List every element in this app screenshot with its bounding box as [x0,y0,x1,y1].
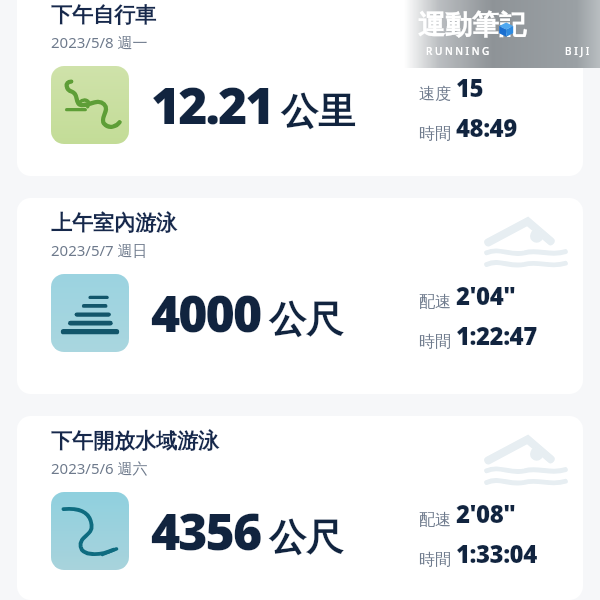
staticText: 配速 [419,292,451,312]
staticText: 1:33:04 [456,537,537,570]
button[interactable]: 上午室內游泳 [17,198,583,394]
staticText: B I J I [565,44,590,58]
staticText: 下午自行車 [51,2,156,28]
staticText: 速度 [419,84,451,104]
staticText: 下午開放水域游泳 [51,428,219,454]
staticText: 上午室內游泳 [51,210,177,236]
staticText: 運動筆 [418,8,499,42]
button[interactable]: 下午開放水域游泳 [17,416,583,600]
staticText: 2023/5/7 週日 [51,240,148,260]
staticText: 1:22:47 [456,319,537,352]
staticText: 公尺 [269,296,343,343]
staticText: 記 [499,8,526,42]
other: Running Biji watermark [404,0,600,68]
staticText: 2023/5/8 週一 [51,32,148,52]
staticText: 15 [456,71,484,104]
staticText: 2'04" [456,279,516,312]
staticText: 4356 [151,497,261,565]
staticText: 配速 [419,510,451,530]
staticText: 4000 [151,279,261,347]
staticText: 公里 [281,88,355,135]
staticText: R U N N I N G [426,44,490,58]
staticText: 48:49 [456,111,517,144]
staticText: 2'08" [456,497,516,530]
staticText: 公尺 [269,514,343,561]
staticText: 時間 [419,550,451,570]
staticText: 2023/5/6 週六 [51,458,148,478]
button[interactable]: 下午自行車 [17,0,583,176]
staticText: 時間 [419,332,451,352]
staticText: 時間 [419,124,451,144]
staticText: 12.21 [151,71,273,139]
